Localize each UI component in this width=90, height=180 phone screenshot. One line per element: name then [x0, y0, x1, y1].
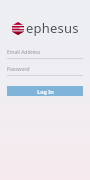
button[interactable]: Log In [7, 86, 83, 96]
button[interactable]: Password [7, 65, 83, 76]
staticText: Email Address [7, 49, 41, 56]
staticText: Password [7, 66, 30, 73]
staticText: Log In [37, 88, 54, 95]
other: Ephesus logo [11, 22, 25, 35]
button[interactable]: Email Address [7, 48, 83, 59]
staticText: ephesus [26, 19, 79, 37]
